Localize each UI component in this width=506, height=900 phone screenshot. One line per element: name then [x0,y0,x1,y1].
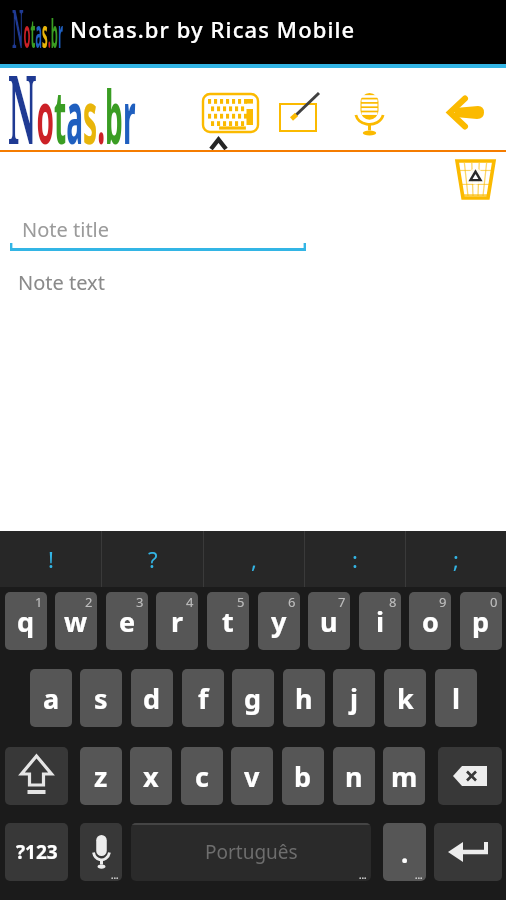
button[interactable]: m [383,747,425,805]
button[interactable]: ! [0,531,101,587]
staticText: 1 [35,593,43,611]
button[interactable]: k [384,669,426,727]
button[interactable]: x [130,747,172,805]
staticText: s [94,680,108,717]
staticText: l [452,680,461,717]
staticText: k [397,680,414,717]
staticText: ! [48,544,54,574]
button[interactable]: v [231,747,273,805]
button[interactable]: g [232,669,274,727]
button[interactable]: w [55,592,97,650]
staticText: h [295,680,313,717]
button[interactable]: : [305,531,405,587]
staticText: . [401,835,409,870]
staticText: c [195,758,209,795]
staticText: 4 [186,593,194,611]
button[interactable]: Português [131,823,371,881]
staticText: o [422,603,439,640]
button[interactable]: ... [80,823,122,881]
button[interactable]: o [409,592,451,650]
button[interactable]: q [5,592,47,650]
staticText: 3 [136,593,144,611]
staticText: 6 [288,593,296,611]
staticText: d [143,680,161,717]
staticText: m [391,758,418,795]
button[interactable]: a [30,669,72,727]
button[interactable] [455,159,496,200]
staticText: 5 [237,593,245,611]
staticText: y [271,603,287,640]
staticText: z [94,758,108,795]
button[interactable]: ; [406,531,506,587]
staticText: x [143,758,159,795]
button[interactable] [444,93,488,131]
button[interactable]: . [383,823,426,881]
staticText: t [222,603,234,640]
button[interactable]: d [131,669,173,727]
staticText: i [376,603,385,640]
staticText: n [345,758,363,795]
button[interactable]: c [181,747,223,805]
staticText: g [244,680,262,717]
staticText: Note text [18,269,105,296]
staticText: r [171,603,184,640]
staticText: 2 [85,593,93,611]
staticText: f [198,680,209,717]
button[interactable]: y [258,592,300,650]
button[interactable] [434,823,502,881]
button[interactable]: t [207,592,249,650]
button[interactable]: ? [102,531,203,587]
staticText: u [320,603,338,640]
button[interactable]: l [435,669,477,727]
button[interactable] [5,747,68,805]
staticText: ?123 [16,839,58,865]
staticText: Notas.br [8,44,136,172]
staticText: ; [453,544,459,574]
button[interactable] [351,92,387,136]
button[interactable]: p [460,592,502,650]
staticText: a [43,680,60,717]
button[interactable] [438,747,502,805]
button[interactable]: j [333,669,375,727]
button[interactable] [276,88,324,133]
staticText: 7 [338,593,346,611]
staticText: : [352,544,358,574]
button[interactable]: e [106,592,148,650]
staticText: v [244,758,260,795]
staticText: Português [205,839,298,865]
staticText: e [119,603,136,640]
staticText: q [17,603,35,640]
button[interactable]: s [80,669,122,727]
staticText: 9 [439,593,447,611]
button[interactable]: h [283,669,325,727]
staticText: ... [111,869,119,881]
staticText: w [64,603,88,640]
button[interactable]: f [182,669,224,727]
button[interactable] [200,91,261,135]
staticText: 0 [490,593,498,611]
button[interactable]: b [282,747,324,805]
staticText: p [472,603,490,640]
button[interactable]: i [359,592,401,650]
button[interactable]: , [204,531,304,587]
staticText: ? [148,544,158,574]
staticText: Notas.br by Ricas Mobile [70,14,356,44]
staticText: b [294,758,312,795]
staticText: , [251,544,257,574]
staticText: j [350,680,359,717]
button[interactable]: ?123 [5,823,68,881]
staticText: ... [415,869,423,881]
button[interactable]: z [80,747,122,805]
staticText: Note title [22,216,110,243]
button[interactable]: r [156,592,198,650]
button[interactable]: u [308,592,350,650]
staticText: 8 [389,593,397,611]
staticText: ... [359,869,367,881]
button[interactable]: n [333,747,375,805]
staticText: Notas.br [12,0,63,63]
